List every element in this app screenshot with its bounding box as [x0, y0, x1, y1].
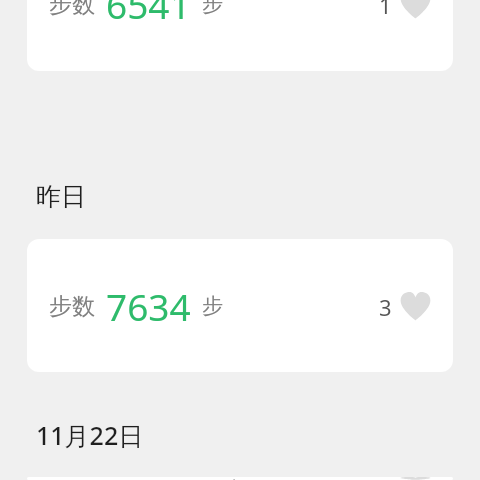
button[interactable]: 4: [379, 477, 431, 480]
button[interactable]: 步数: [27, 477, 453, 480]
button[interactable]: 1: [379, 0, 431, 20]
staticText: 昨日: [36, 181, 86, 212]
other: Like: [400, 291, 431, 322]
staticText: 步数: [49, 292, 95, 321]
other: Like: [400, 477, 431, 480]
staticText: 7634: [106, 281, 191, 331]
staticText: 1: [379, 0, 392, 20]
button[interactable]: 3: [379, 291, 431, 322]
button[interactable]: 步数: [27, 239, 453, 372]
staticText: 步: [202, 293, 223, 319]
staticText: 步数: [49, 0, 95, 19]
staticText: 步: [202, 0, 223, 17]
staticText: 3: [379, 292, 392, 322]
other: Like: [400, 0, 431, 20]
staticText: 11月22日: [36, 418, 144, 452]
button[interactable]: 步数: [27, 0, 453, 71]
staticText: 6541: [106, 0, 191, 29]
staticText: 步: [223, 477, 244, 480]
